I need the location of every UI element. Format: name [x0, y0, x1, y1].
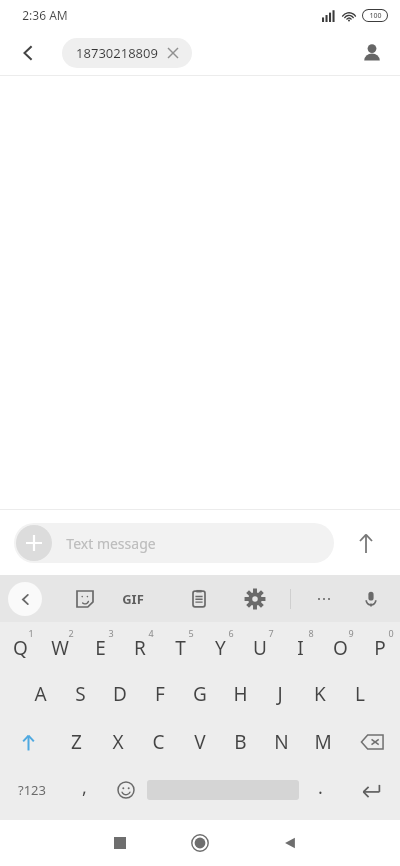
staticText: X: [112, 729, 124, 755]
staticText: I: [297, 635, 304, 661]
staticText: 2:36 AM: [22, 7, 68, 23]
staticText: V: [194, 729, 206, 755]
staticText: 4: [148, 627, 154, 639]
button[interactable]: .: [299, 766, 341, 814]
staticText: P: [374, 635, 386, 661]
button[interactable]: Contact: [352, 33, 392, 73]
button[interactable]: M: [302, 718, 343, 766]
staticText: A: [34, 681, 47, 707]
button[interactable]: More options: [305, 580, 343, 618]
button[interactable]: Stickers: [66, 580, 104, 618]
button[interactable]: H: [220, 670, 260, 718]
staticText: 18730218809: [76, 44, 158, 62]
button[interactable]: B: [220, 718, 261, 766]
staticText: B: [234, 729, 247, 755]
button[interactable]: Emoji: [105, 766, 147, 814]
button[interactable]: S: [60, 670, 100, 718]
staticText: U: [253, 635, 267, 661]
staticText: W: [51, 635, 69, 661]
staticText: ,: [82, 775, 87, 800]
staticText: J: [277, 681, 283, 707]
staticText: 1: [28, 627, 34, 639]
button[interactable]: U: [240, 622, 280, 670]
button[interactable]: Backspace: [343, 718, 400, 766]
staticText: Text message: [66, 534, 156, 553]
button[interactable]: Clipboard: [180, 580, 218, 618]
staticText: .: [318, 775, 323, 800]
staticText: 2: [68, 627, 74, 639]
staticText: Y: [215, 635, 226, 661]
button[interactable]: D: [100, 670, 140, 718]
button[interactable]: O: [320, 622, 360, 670]
staticText: D: [113, 681, 127, 707]
staticText: ?123: [18, 781, 46, 799]
button[interactable]: Voice input: [352, 580, 390, 618]
staticText: 0: [388, 627, 394, 639]
button[interactable]: R: [120, 622, 160, 670]
button[interactable]: Back: [270, 823, 310, 863]
button[interactable]: W: [40, 622, 80, 670]
button[interactable]: I: [280, 622, 320, 670]
button[interactable]: Z: [56, 718, 97, 766]
staticText: F: [155, 681, 165, 707]
button[interactable]: Text message: [14, 523, 334, 563]
button[interactable]: Enter: [341, 766, 400, 814]
button[interactable]: Recents: [100, 823, 140, 863]
staticText: Z: [71, 729, 82, 755]
button[interactable]: Q: [0, 622, 40, 670]
button[interactable]: A: [20, 670, 60, 718]
button[interactable]: K: [300, 670, 340, 718]
button[interactable]: Home: [180, 823, 220, 863]
staticText: R: [134, 635, 146, 661]
button[interactable]: N: [261, 718, 302, 766]
staticText: 8: [308, 627, 314, 639]
button[interactable]: P: [360, 622, 400, 670]
button[interactable]: Back: [8, 33, 48, 73]
staticText: E: [95, 635, 106, 661]
staticText: T: [175, 635, 186, 661]
button[interactable]: C: [138, 718, 179, 766]
button[interactable]: F: [140, 670, 180, 718]
button[interactable]: Settings: [236, 580, 274, 618]
button[interactable]: J: [260, 670, 300, 718]
button[interactable]: Y: [200, 622, 240, 670]
staticText: O: [333, 635, 348, 661]
button[interactable]: V: [179, 718, 220, 766]
button[interactable]: G: [180, 670, 220, 718]
staticText: L: [355, 681, 365, 707]
staticText: 100: [369, 11, 382, 21]
button[interactable]: Send: [346, 523, 386, 563]
staticText: K: [314, 681, 326, 707]
staticText: H: [233, 681, 248, 707]
button[interactable]: ,: [63, 766, 105, 814]
button[interactable]: L: [340, 670, 380, 718]
button[interactable]: GIF: [122, 590, 144, 608]
button[interactable]: T: [160, 622, 200, 670]
staticText: G: [193, 681, 207, 707]
button[interactable]: 18730218809: [62, 38, 192, 68]
button[interactable]: Collapse toolbar: [8, 582, 42, 616]
staticText: 6: [228, 627, 234, 639]
staticText: S: [75, 681, 86, 707]
staticText: 5: [188, 627, 194, 639]
staticText: M: [314, 729, 332, 755]
staticText: Q: [13, 635, 28, 661]
button[interactable]: E: [80, 622, 120, 670]
staticText: 7: [268, 627, 274, 639]
staticText: N: [274, 729, 289, 755]
button[interactable]: X: [97, 718, 138, 766]
button[interactable]: Shift: [0, 718, 56, 766]
staticText: 9: [348, 627, 354, 639]
staticText: C: [152, 729, 165, 755]
staticText: 3: [108, 627, 114, 639]
button[interactable]: ?123: [0, 766, 63, 814]
